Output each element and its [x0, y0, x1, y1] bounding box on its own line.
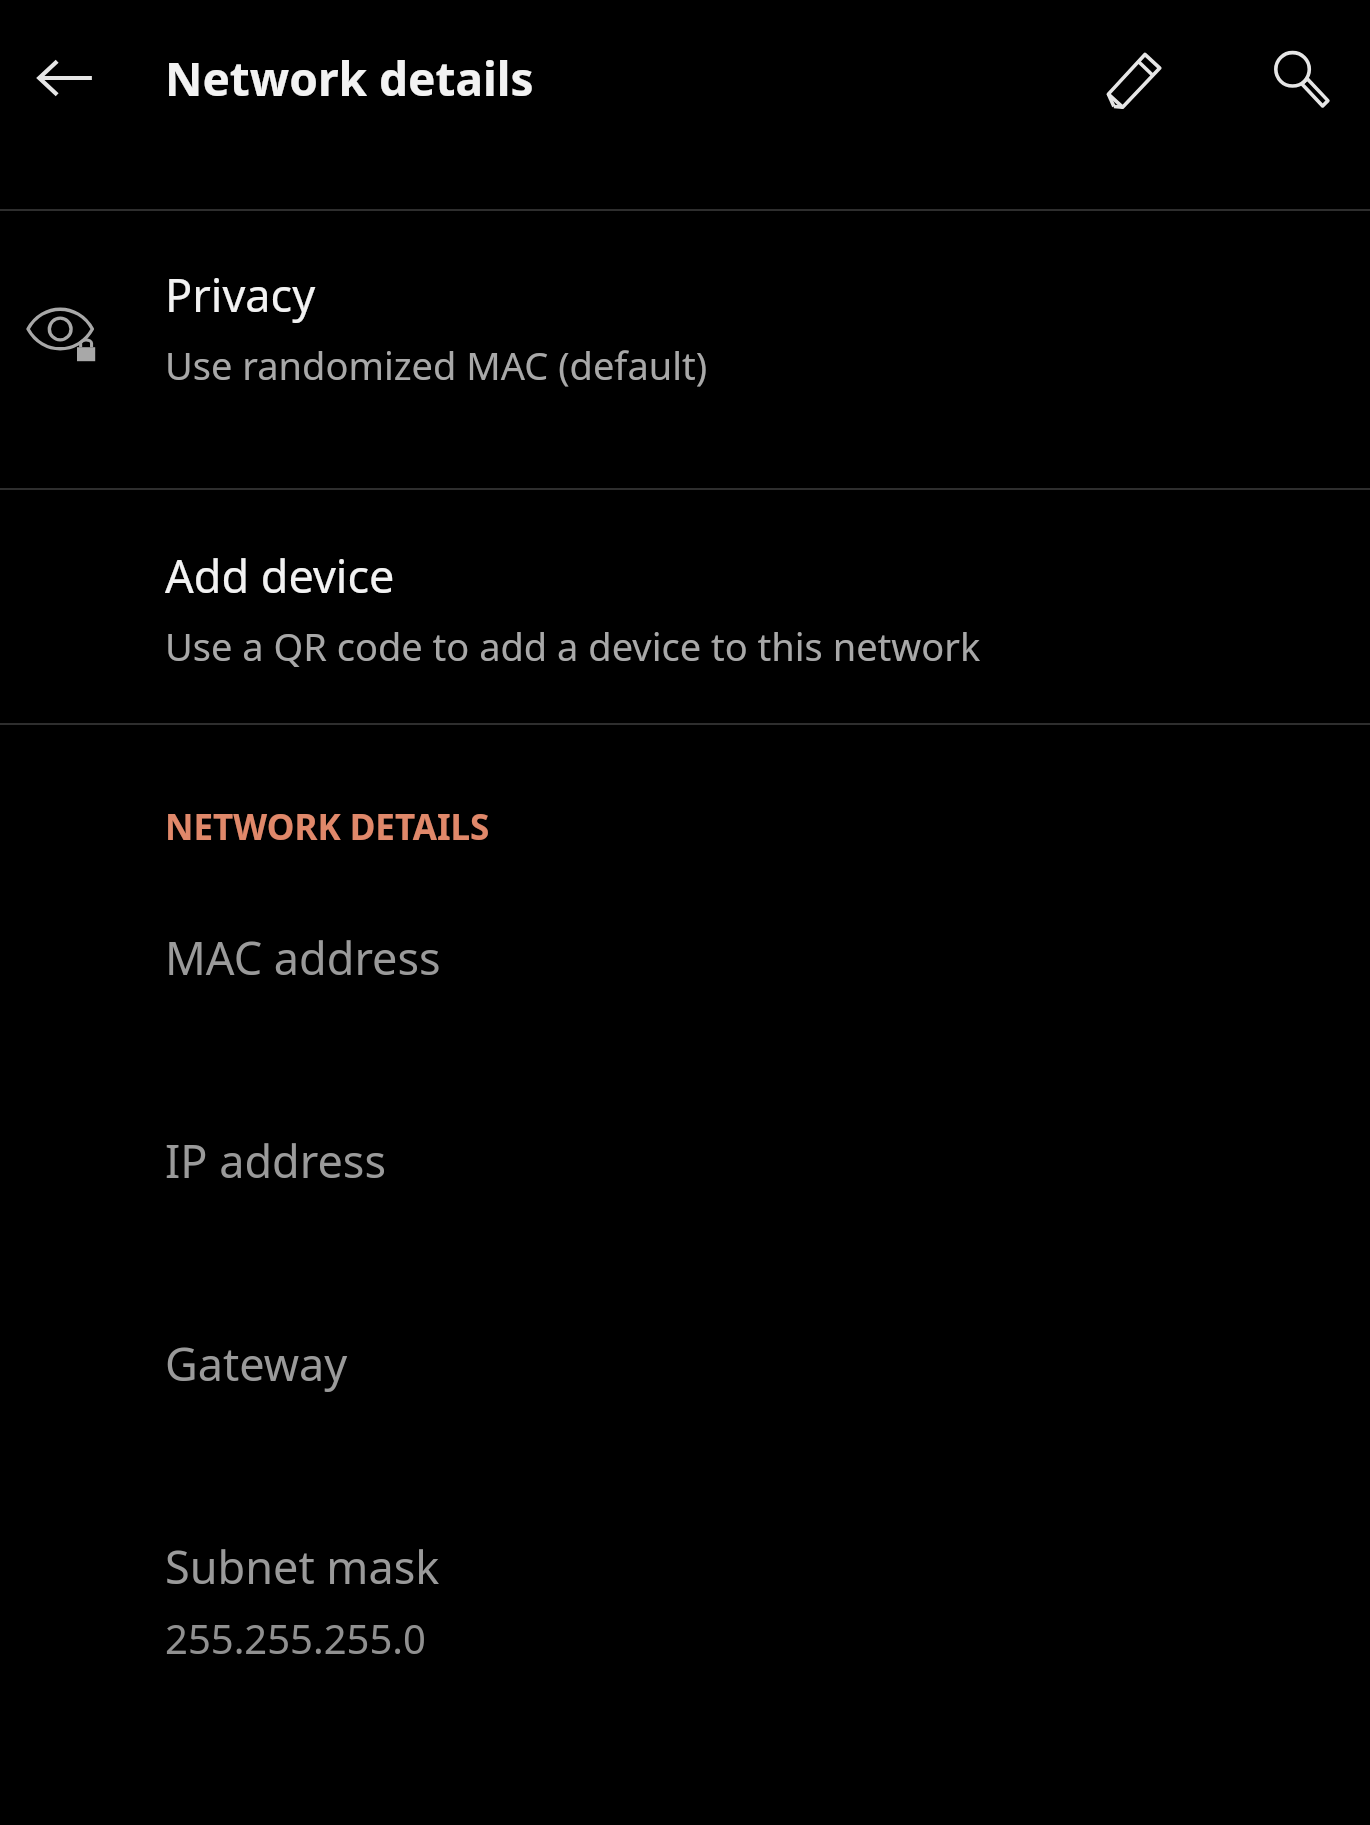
button[interactable]: Edit [1090, 33, 1180, 123]
button[interactable]: Subnet mask [0, 1536, 1370, 1739]
staticText: Subnet mask [165, 1536, 440, 1597]
staticText: Add device [165, 545, 395, 606]
button[interactable]: MAC address [0, 927, 1370, 1130]
staticText: Use randomized MAC (default) [165, 339, 708, 391]
button[interactable]: Search [1255, 33, 1345, 123]
staticText: IP address [165, 1130, 386, 1191]
button[interactable]: Add device [0, 490, 1370, 725]
staticText: MAC address [165, 927, 441, 988]
staticText: 255.255.255.0 [165, 1611, 426, 1665]
button[interactable]: Back [20, 33, 110, 123]
button[interactable]: IP address [0, 1130, 1370, 1333]
staticText: Network details [165, 47, 534, 110]
staticText: Gateway [165, 1333, 348, 1394]
staticText: NETWORK DETAILS [165, 803, 490, 851]
button[interactable]: Gateway [0, 1333, 1370, 1536]
staticText: Privacy [165, 264, 316, 325]
staticText: Use a QR code to add a device to this ne… [165, 620, 981, 672]
button[interactable]: Privacy [0, 211, 1370, 490]
